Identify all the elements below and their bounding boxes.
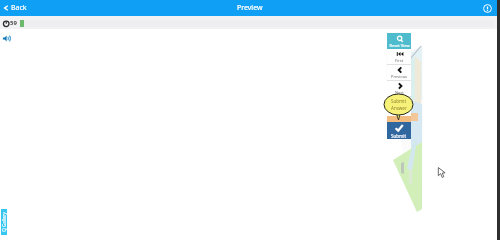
staticText: Q Gallery [1, 212, 7, 232]
staticText: Previous [391, 74, 408, 79]
button[interactable]: Submit Answer tip [384, 94, 413, 120]
button[interactable]: Submit [387, 122, 411, 139]
staticText: Reset View [389, 43, 410, 48]
staticText: Submit [391, 133, 407, 139]
staticText: First [395, 58, 404, 63]
staticText: Submit [391, 98, 407, 104]
button[interactable]: Info [481, 2, 494, 15]
button[interactable]: First [387, 49, 411, 65]
staticText: Answer [391, 105, 407, 111]
button[interactable]: Show question list [1, 209, 7, 235]
staticText: Next [395, 90, 404, 95]
button[interactable]: Back [0, 2, 31, 14]
button[interactable]: Next [387, 81, 411, 97]
staticText: 59 [10, 19, 17, 27]
button[interactable]: Previous [387, 65, 411, 81]
button[interactable]: Reset View [387, 33, 411, 49]
button[interactable]: Volume [2, 33, 13, 44]
staticText: Back [11, 3, 27, 13]
staticText: Preview [237, 3, 263, 13]
